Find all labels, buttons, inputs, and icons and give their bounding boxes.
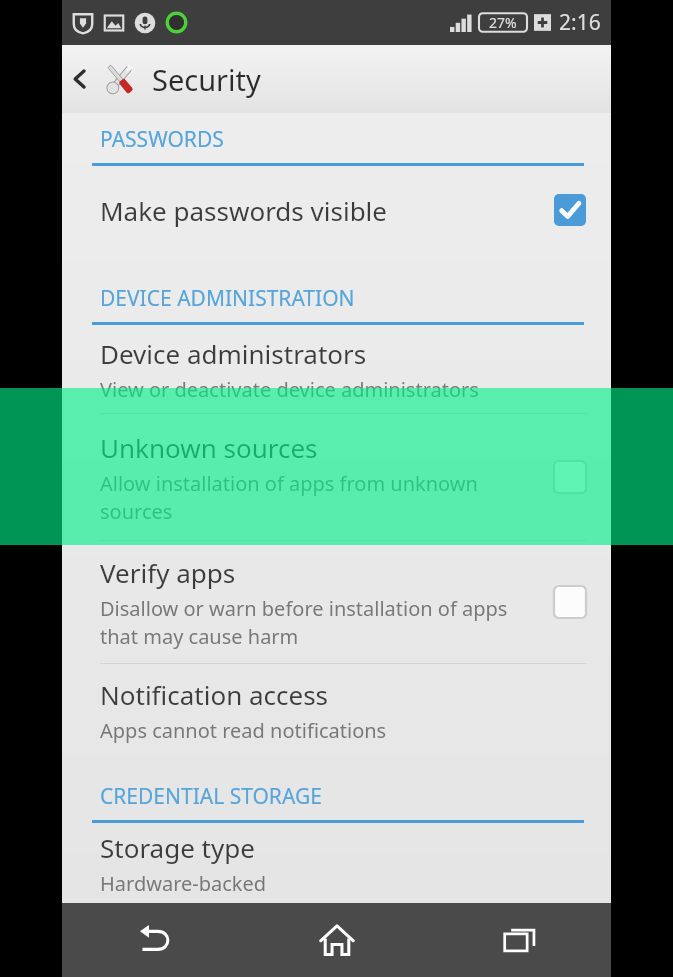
staticText: Storage type xyxy=(100,830,255,865)
staticText: Device administrators xyxy=(100,336,367,371)
button[interactable]: Notification access xyxy=(62,664,611,756)
button[interactable]: Storage type xyxy=(62,823,611,903)
staticText: 27% xyxy=(489,13,517,32)
button[interactable]: Unknown sources xyxy=(62,414,611,540)
staticText: DEVICE ADMINISTRATION xyxy=(100,284,355,313)
button[interactable]: Verify apps xyxy=(62,541,611,663)
staticText: Unknown sources xyxy=(100,430,318,465)
button[interactable]: Disabled xyxy=(551,458,589,496)
staticText: Verify apps xyxy=(100,555,236,590)
staticText: Make passwords visible xyxy=(100,193,387,228)
staticText: Security xyxy=(152,60,261,99)
staticText: CREDENTIAL STORAGE xyxy=(100,782,322,811)
button[interactable]: Enabled xyxy=(551,191,589,229)
button[interactable]: Back xyxy=(64,51,96,107)
staticText: Notification access xyxy=(100,677,329,712)
button[interactable]: Device administrators xyxy=(62,325,611,413)
button[interactable]: Make passwords visible xyxy=(62,166,611,254)
staticText: Hardware-backed xyxy=(100,870,267,897)
staticText: Disallow or warn before installation of … xyxy=(100,595,529,650)
button[interactable]: Recent apps xyxy=(428,903,611,977)
staticText: PASSWORDS xyxy=(100,125,224,154)
staticText: 2:16 xyxy=(559,8,601,37)
staticText: View or deactivate device administrators xyxy=(100,376,479,403)
staticText: Allow installation of apps from unknown … xyxy=(100,470,529,525)
button[interactable]: Disabled xyxy=(551,583,589,621)
button[interactable]: Back xyxy=(62,903,245,977)
staticText: Apps cannot read notifications xyxy=(100,717,387,744)
button[interactable]: Home xyxy=(245,903,428,977)
